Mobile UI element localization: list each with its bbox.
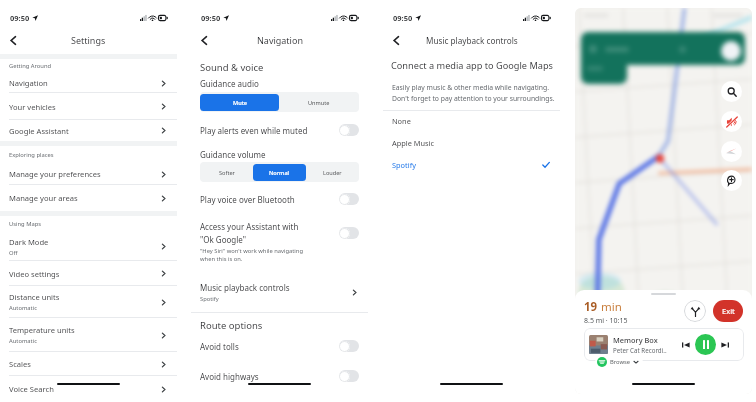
button[interactable]: Browse [597, 355, 639, 369]
staticText: Distance units [9, 292, 60, 302]
staticText: 09:50 [201, 13, 221, 23]
staticText: Manage your areas [9, 193, 78, 203]
button[interactable]: Softer [200, 164, 253, 181]
staticText: Using Maps [9, 220, 42, 228]
staticText: Sound & voice [200, 61, 264, 74]
button[interactable]: Toggle [339, 370, 359, 382]
staticText: min [598, 299, 622, 315]
button[interactable]: Back [4, 31, 22, 49]
staticText: 19 [584, 299, 598, 315]
staticText: Navigation [257, 34, 303, 46]
staticText: Spotify [200, 295, 219, 303]
staticText: Louder [323, 169, 342, 177]
staticText: Automatic [9, 304, 37, 312]
button[interactable]: Navigation [0, 73, 177, 93]
staticText: Access your Assistant with [200, 221, 299, 232]
button[interactable]: Unmute [279, 94, 359, 111]
button[interactable]: Louder [306, 164, 359, 181]
button[interactable]: Next [721, 341, 729, 349]
staticText: 09:50 [10, 13, 30, 23]
button[interactable]: Avoid tolls [200, 339, 359, 353]
staticText: Navigation [9, 78, 48, 88]
staticText: Scales [9, 359, 31, 369]
staticText: Peter Cat Recordi.. [613, 346, 667, 354]
button[interactable]: Voice Search [0, 376, 177, 402]
staticText: Dark Mode [9, 237, 49, 247]
staticText: Normal [269, 169, 290, 177]
staticText: Avoid highways [200, 371, 339, 382]
button[interactable]: Previous [682, 341, 690, 349]
button[interactable]: Access your Assistant with [200, 221, 359, 245]
staticText: Getting Around [9, 62, 52, 70]
button[interactable]: Video settings [0, 261, 177, 286]
staticText: Route options [200, 319, 263, 332]
staticText: 8.5 mi · 10:15 [584, 316, 628, 326]
button[interactable]: Mute [721, 111, 742, 132]
button[interactable]: Play voice over Bluetooth [200, 192, 359, 206]
staticText: Off [9, 249, 18, 257]
button[interactable]: Toggle [339, 193, 359, 205]
button[interactable]: Temperature units [0, 318, 177, 352]
staticText: Apple Music [392, 138, 550, 148]
button[interactable]: Toggle [339, 340, 359, 352]
staticText: Play alerts even while muted [200, 125, 339, 136]
button[interactable]: Google Assistant [0, 120, 177, 141]
button[interactable]: Distance units [0, 286, 177, 318]
staticText: Connect a media app to Google Maps [391, 59, 553, 72]
staticText: Easily play music & other media while na… [392, 83, 555, 103]
staticText: Spotify [392, 160, 542, 170]
button[interactable]: Dark Mode [0, 232, 177, 261]
button[interactable]: Avoid highways [200, 369, 359, 383]
button[interactable]: Manage your preferences [0, 163, 177, 185]
staticText: Your vehicles [9, 102, 56, 112]
staticText: Softer [219, 169, 235, 177]
staticText: Video settings [9, 269, 60, 279]
button[interactable]: Scales [0, 352, 177, 376]
staticText: "Ok Google" [200, 234, 247, 245]
staticText: Temperature units [9, 325, 75, 335]
staticText: Mute [233, 99, 247, 107]
button[interactable]: Pause [695, 334, 716, 355]
button[interactable]: Music playback controls [200, 278, 358, 306]
button[interactable]: Route overview [684, 300, 706, 322]
staticText: Guidance audio [200, 78, 259, 89]
button[interactable]: Normal [253, 164, 306, 181]
button[interactable]: Your vehicles [0, 93, 177, 120]
staticText: Memory Box [613, 335, 658, 345]
button[interactable]: Mute [200, 94, 279, 111]
staticText: Voice Search [9, 384, 54, 394]
button[interactable]: Back [387, 31, 405, 49]
staticText: Exit [722, 306, 735, 316]
button[interactable]: Spotify [392, 154, 550, 175]
staticText: Exploring places [9, 151, 54, 159]
staticText: Unmute [308, 99, 330, 107]
button[interactable]: None [392, 110, 550, 131]
staticText: Music playback controls [200, 282, 290, 293]
button[interactable]: Play alerts even while muted [200, 123, 359, 137]
button[interactable]: Toggle [339, 227, 359, 239]
button[interactable]: Manage your areas [0, 185, 177, 211]
staticText: Music playback controls [426, 35, 518, 46]
staticText: None [392, 116, 550, 126]
staticText: 09:50 [393, 13, 413, 23]
staticText: Guidance volume [200, 149, 266, 160]
button[interactable]: Toggle [339, 124, 359, 136]
button[interactable]: Exit [713, 300, 743, 322]
staticText: Google Assistant [9, 126, 69, 136]
staticText: Play voice over Bluetooth [200, 194, 339, 205]
button[interactable]: Search [721, 81, 742, 102]
staticText: Manage your preferences [9, 169, 101, 179]
button[interactable]: Back [195, 31, 213, 49]
staticText: Automatic [9, 337, 37, 345]
button[interactable]: Report [721, 170, 742, 191]
staticText: Settings [71, 34, 106, 46]
staticText: Avoid tolls [200, 341, 339, 352]
button[interactable]: Apple Music [392, 132, 550, 153]
staticText: Browse [610, 358, 631, 366]
button[interactable]: Compass [721, 141, 742, 162]
staticText: "Hey Siri" won't work while navigating w… [200, 247, 304, 263]
